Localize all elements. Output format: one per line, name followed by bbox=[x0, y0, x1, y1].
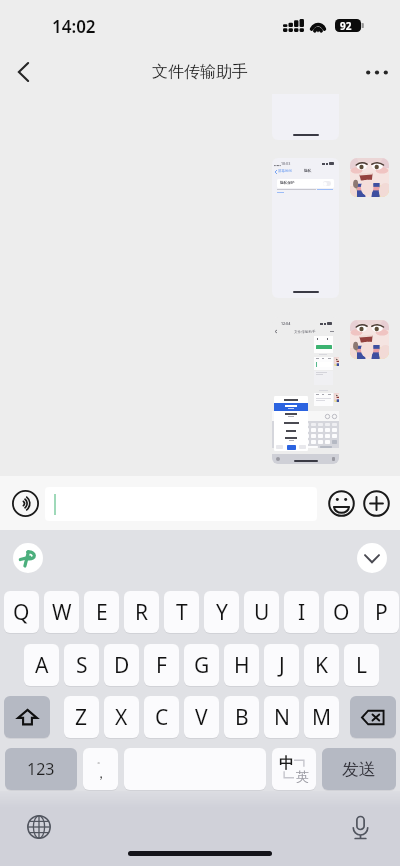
staticText: H bbox=[234, 651, 250, 680]
button[interactable]: N bbox=[264, 696, 299, 738]
staticText: R bbox=[135, 598, 149, 627]
staticText: 文件传输助手 bbox=[294, 330, 316, 335]
staticText: 12:04 bbox=[281, 321, 291, 326]
button[interactable]: M bbox=[304, 696, 339, 738]
button[interactable]: S bbox=[64, 644, 99, 686]
staticText: 。 bbox=[97, 755, 105, 765]
staticText: W bbox=[52, 598, 72, 627]
button[interactable]: Hide keyboard bbox=[357, 543, 387, 573]
staticText: L bbox=[356, 651, 368, 680]
button[interactable]: G bbox=[184, 644, 219, 686]
button[interactable]: Contact avatar bbox=[350, 158, 389, 197]
staticText: Y bbox=[216, 598, 228, 627]
button[interactable]: K bbox=[304, 644, 339, 686]
button[interactable]: X bbox=[104, 696, 139, 738]
button[interactable]: Z bbox=[64, 696, 99, 738]
button[interactable]: R bbox=[124, 591, 159, 633]
staticText: M bbox=[312, 703, 332, 732]
button[interactable]: A bbox=[24, 644, 59, 686]
button[interactable]: Back bbox=[0, 50, 46, 94]
button[interactable]: D bbox=[104, 644, 139, 686]
button[interactable]: U bbox=[244, 591, 279, 633]
button[interactable]: Emoji bbox=[327, 489, 355, 517]
button[interactable]: Y bbox=[204, 591, 239, 633]
staticText: S bbox=[76, 651, 88, 680]
staticText: I bbox=[298, 598, 306, 627]
button[interactable]: Shift bbox=[4, 696, 50, 738]
button[interactable]: E bbox=[84, 591, 119, 633]
staticText: 14:02 bbox=[52, 15, 96, 38]
staticText: P bbox=[375, 598, 388, 627]
button[interactable]: Comma key bbox=[83, 748, 118, 790]
staticText: 92 bbox=[340, 19, 352, 32]
button[interactable]: P bbox=[364, 591, 399, 633]
button[interactable]: I bbox=[284, 591, 319, 633]
button[interactable]: More actions bbox=[362, 489, 390, 517]
button[interactable] bbox=[45, 487, 317, 521]
staticText: O bbox=[333, 598, 350, 627]
button[interactable]: H bbox=[224, 644, 259, 686]
button[interactable]: T bbox=[164, 591, 199, 633]
button[interactable]: C bbox=[144, 696, 179, 738]
button[interactable]: Input method settings bbox=[13, 543, 43, 573]
staticText: 中 bbox=[279, 754, 294, 773]
staticText: 文件传输助手 bbox=[152, 62, 248, 82]
button[interactable]: More options bbox=[354, 50, 400, 94]
button[interactable]: Screenshot bbox=[272, 94, 339, 140]
staticText: B bbox=[235, 703, 249, 732]
button[interactable]: Switch Chinese English bbox=[272, 748, 316, 790]
button[interactable]: Voice input bbox=[6, 484, 44, 522]
staticText: Q bbox=[13, 598, 30, 627]
staticText: J bbox=[279, 651, 285, 680]
staticText: 隐私保护 bbox=[280, 181, 295, 186]
staticText: G bbox=[194, 651, 210, 680]
staticText: 123 bbox=[27, 758, 55, 780]
staticText: V bbox=[195, 703, 208, 732]
button[interactable]: Voice dictation bbox=[343, 810, 377, 844]
staticText: Z bbox=[75, 703, 88, 732]
staticText: 发送 bbox=[342, 759, 376, 780]
staticText: U bbox=[254, 598, 270, 627]
button[interactable]: Contact avatar bbox=[350, 320, 389, 359]
staticText: E bbox=[96, 598, 108, 627]
button[interactable]: L bbox=[344, 644, 379, 686]
staticText: ••••• bbox=[274, 163, 281, 168]
staticText: D bbox=[114, 651, 130, 680]
button[interactable]: Q bbox=[4, 591, 39, 633]
button[interactable]: O bbox=[324, 591, 359, 633]
button[interactable]: F bbox=[144, 644, 179, 686]
staticText: 18:03 bbox=[281, 161, 291, 166]
staticText: C bbox=[155, 703, 169, 732]
staticText: N bbox=[274, 703, 290, 732]
staticText: F bbox=[156, 651, 167, 680]
staticText: 屏幕时间 bbox=[278, 169, 292, 173]
button[interactable]: 123 bbox=[5, 748, 77, 790]
staticText: 隐私 bbox=[304, 169, 312, 174]
button[interactable]: J bbox=[264, 644, 299, 686]
button[interactable]: Backspace bbox=[350, 696, 396, 738]
staticText: 英 bbox=[296, 768, 309, 784]
button[interactable]: W bbox=[44, 591, 79, 633]
button[interactable]: B bbox=[224, 696, 259, 738]
button[interactable]: Screenshot of settings bbox=[272, 158, 339, 298]
staticText: K bbox=[315, 651, 328, 680]
staticText: X bbox=[115, 703, 128, 732]
staticText: A bbox=[35, 651, 49, 680]
staticText: ， bbox=[94, 765, 108, 783]
button[interactable]: Switch input language bbox=[22, 810, 56, 844]
button[interactable]: V bbox=[184, 696, 219, 738]
staticText: T bbox=[176, 598, 188, 627]
button[interactable]: Send bbox=[322, 748, 396, 790]
button[interactable]: Screenshot of chat bbox=[272, 317, 339, 464]
